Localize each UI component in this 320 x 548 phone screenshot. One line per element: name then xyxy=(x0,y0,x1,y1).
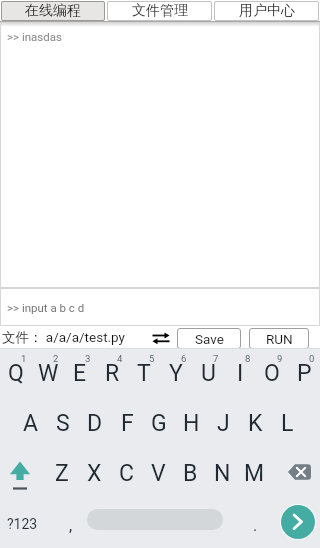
button[interactable]: Q xyxy=(0,348,32,398)
staticText: 文件管理 xyxy=(132,2,188,20)
staticText: Q xyxy=(8,360,24,387)
staticText: 8 xyxy=(245,353,251,364)
button[interactable]: X xyxy=(78,448,110,498)
button[interactable]: B xyxy=(174,448,206,498)
button[interactable]: . xyxy=(240,498,270,548)
staticText: C xyxy=(119,460,134,487)
button[interactable]: F xyxy=(111,398,143,448)
staticText: N xyxy=(214,460,231,487)
staticText: 7 xyxy=(213,353,219,364)
staticText: E xyxy=(73,360,87,387)
button[interactable]: A xyxy=(15,398,47,448)
staticText: F xyxy=(121,410,134,437)
staticText: 1 xyxy=(21,353,27,364)
button[interactable]: V xyxy=(142,448,174,498)
button[interactable]: G xyxy=(143,398,175,448)
staticText: D xyxy=(87,410,103,437)
staticText: 0 xyxy=(309,353,315,364)
staticText: K xyxy=(248,410,263,437)
staticText: I xyxy=(237,360,244,387)
button[interactable]: I xyxy=(224,348,256,398)
button[interactable] xyxy=(272,448,320,498)
staticText: A xyxy=(23,410,39,437)
staticText: 9 xyxy=(277,353,283,364)
button[interactable] xyxy=(0,448,48,498)
staticText: >> input a b c d xyxy=(7,301,85,314)
staticText: B xyxy=(183,460,198,487)
button[interactable] xyxy=(280,504,316,540)
staticText: . xyxy=(253,516,258,535)
staticText: Z xyxy=(55,460,69,487)
button[interactable]: C xyxy=(110,448,142,498)
button[interactable]: >> inasdas xyxy=(0,22,320,288)
button[interactable] xyxy=(87,509,223,530)
staticText: L xyxy=(281,410,294,437)
staticText: M xyxy=(244,460,265,487)
button[interactable]: K xyxy=(239,398,271,448)
button[interactable]: 在线编程 xyxy=(1,1,105,21)
button[interactable]: P xyxy=(288,348,320,398)
button[interactable]: R xyxy=(96,348,128,398)
staticText: Save xyxy=(195,331,224,347)
staticText: RUN xyxy=(266,331,293,347)
button[interactable]: S xyxy=(47,398,79,448)
button[interactable]: 文件管理 xyxy=(107,1,212,21)
staticText: 4 xyxy=(117,353,123,364)
button[interactable]: Z xyxy=(46,448,78,498)
button[interactable]: , xyxy=(56,498,86,548)
staticText: Y xyxy=(169,360,183,387)
staticText: 2 xyxy=(53,353,59,364)
staticText: >> inasdas xyxy=(7,30,62,43)
staticText: H xyxy=(183,410,200,437)
button[interactable]: E xyxy=(64,348,96,398)
button[interactable]: J xyxy=(207,398,239,448)
button[interactable]: N xyxy=(206,448,238,498)
staticText: J xyxy=(217,410,230,437)
button[interactable]: M xyxy=(238,448,270,498)
staticText: O xyxy=(264,360,280,387)
staticText: U xyxy=(201,360,216,387)
button[interactable]: Y xyxy=(160,348,192,398)
button[interactable]: ?123 xyxy=(0,498,44,548)
button[interactable]: RUN xyxy=(249,328,309,349)
button[interactable]: D xyxy=(79,398,111,448)
staticText: 在线编程 xyxy=(25,2,81,20)
button[interactable]: 用户中心 xyxy=(214,1,319,21)
staticText: W xyxy=(38,360,59,387)
staticText: T xyxy=(137,360,151,387)
button[interactable]: O xyxy=(256,348,288,398)
staticText: ?123 xyxy=(7,516,38,532)
staticText: 用户中心 xyxy=(239,2,295,20)
staticText: V xyxy=(151,460,166,487)
button[interactable]: Save xyxy=(177,328,241,349)
staticText: 文件： a/a/a/test.py xyxy=(2,329,126,346)
staticText: , xyxy=(69,516,73,535)
button[interactable]: U xyxy=(192,348,224,398)
button[interactable]: H xyxy=(175,398,207,448)
staticText: S xyxy=(56,410,70,437)
button[interactable]: W xyxy=(32,348,64,398)
staticText: 5 xyxy=(149,353,155,364)
staticText: P xyxy=(297,360,312,387)
button[interactable]: T xyxy=(128,348,160,398)
staticText: R xyxy=(105,360,120,387)
staticText: 6 xyxy=(181,353,187,364)
button[interactable]: L xyxy=(271,398,303,448)
button[interactable] xyxy=(152,332,170,344)
staticText: X xyxy=(87,460,102,487)
staticText: 3 xyxy=(85,353,91,364)
staticText: G xyxy=(151,410,167,437)
button[interactable]: >> input a b c d xyxy=(0,288,320,326)
